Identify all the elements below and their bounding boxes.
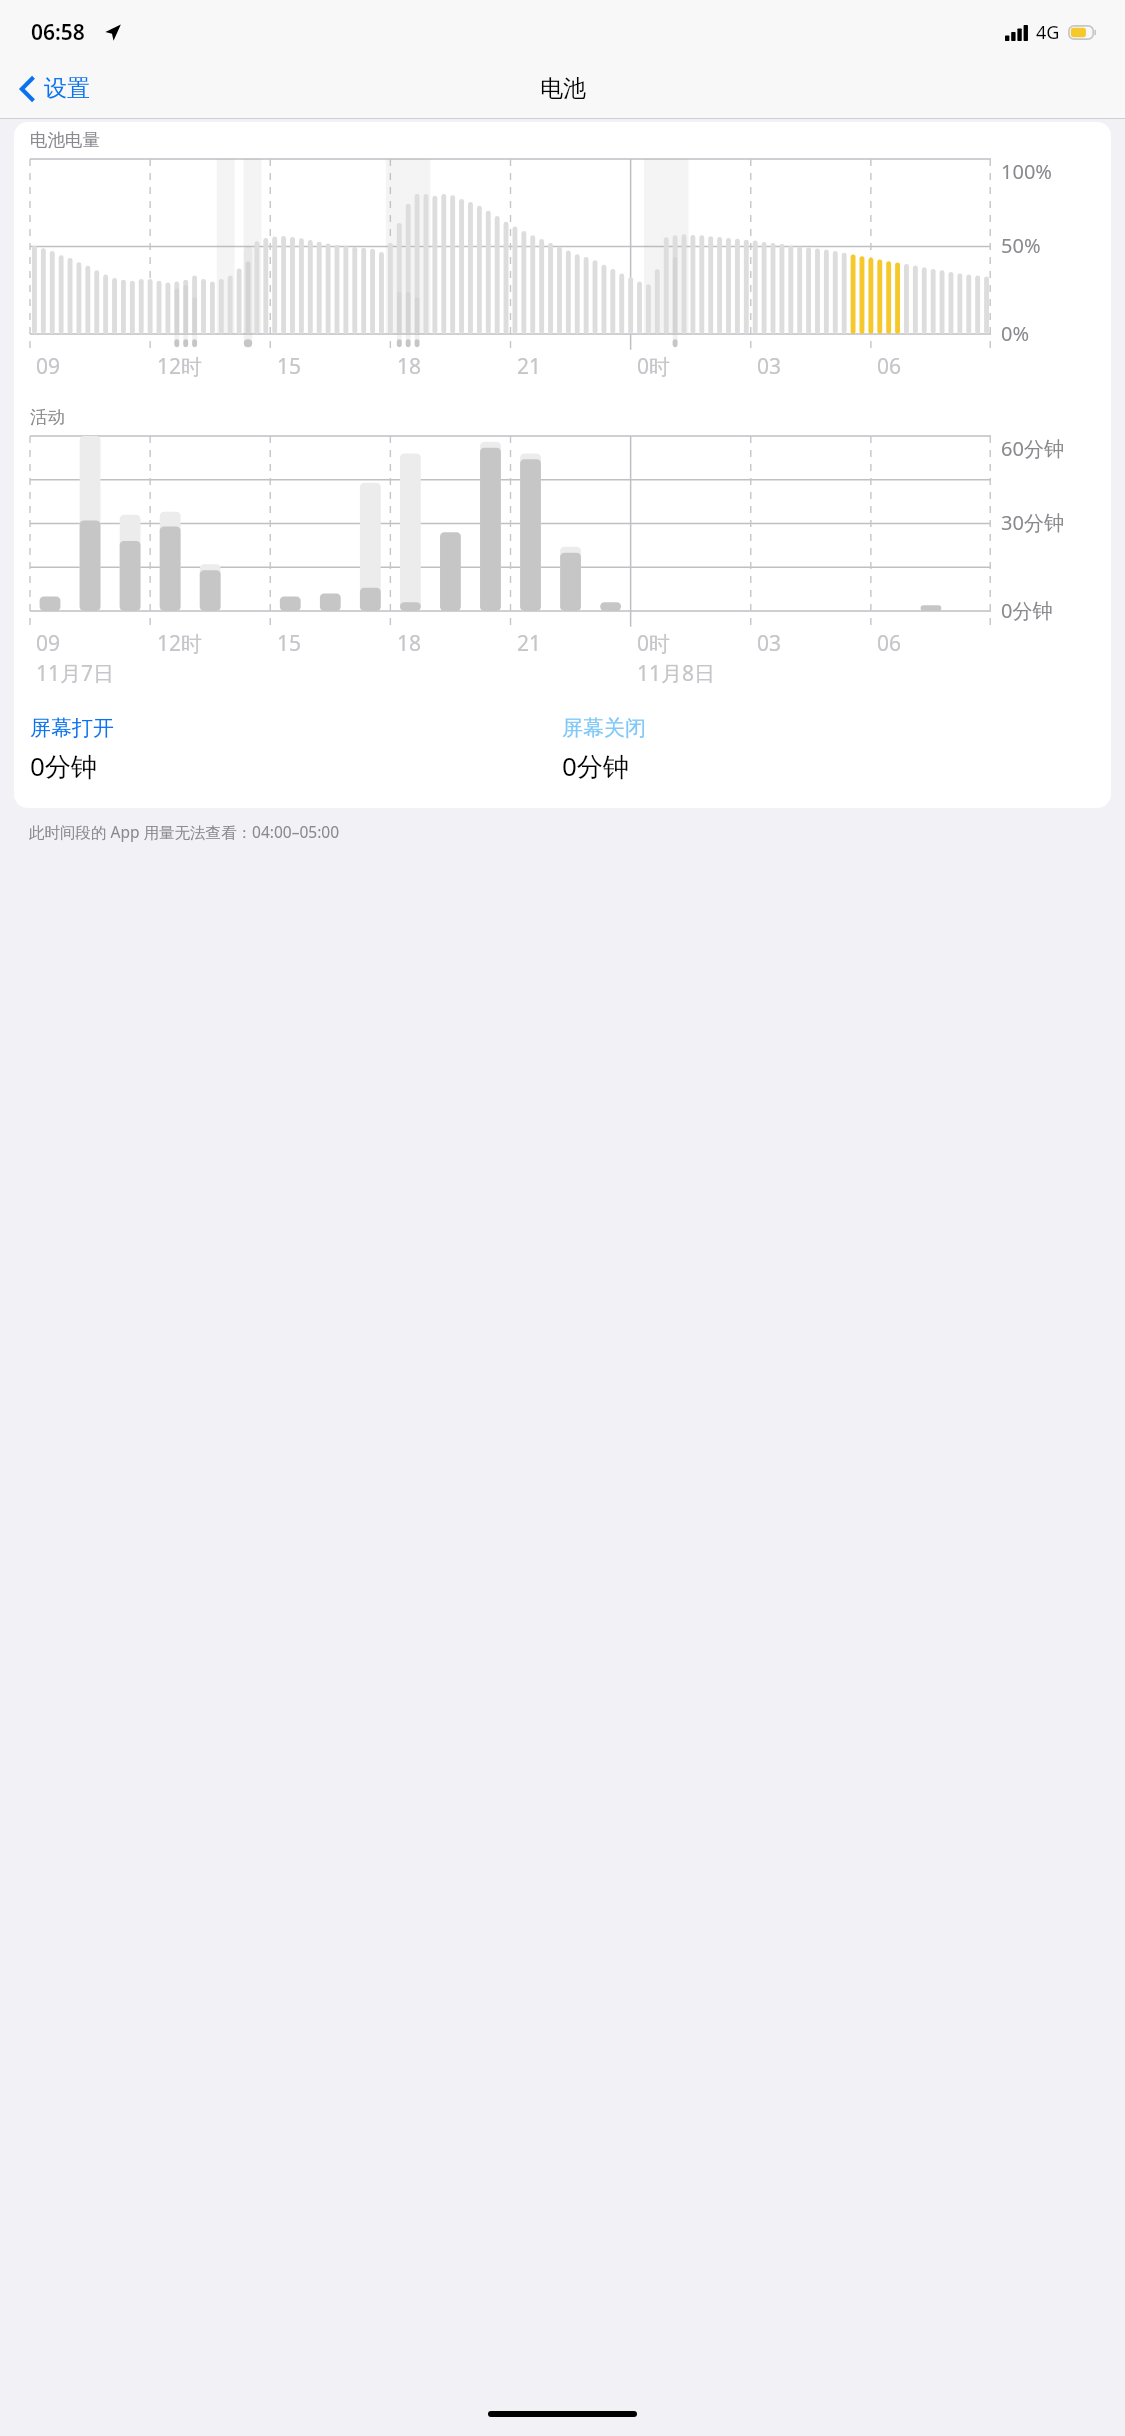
staticText: 50% <box>1001 232 1041 259</box>
staticText: 09 <box>36 352 61 381</box>
staticText: 0% <box>1001 320 1030 347</box>
staticText: 0分钟 <box>1001 597 1053 624</box>
staticText: 活动 <box>30 406 65 428</box>
staticText: 电池电量 <box>30 129 100 151</box>
staticText: 15 <box>277 629 302 658</box>
staticText: 15 <box>277 352 302 381</box>
staticText: 03 <box>757 629 782 658</box>
staticText: 06:58 <box>31 18 85 47</box>
staticText: 0时 <box>637 629 671 658</box>
staticText: 0时 <box>637 352 671 381</box>
staticText: 21 <box>517 629 542 658</box>
staticText: 此时间段的 App 用量无法查看：04:00–05:00 <box>29 821 340 842</box>
staticText: 03 <box>757 352 782 381</box>
staticText: 11月8日 <box>637 659 716 688</box>
staticText: 11月7日 <box>36 659 115 688</box>
staticText: 21 <box>517 352 542 381</box>
staticText: 30分钟 <box>1001 509 1064 536</box>
staticText: 0分钟 <box>562 748 629 784</box>
staticText: 06 <box>877 352 902 381</box>
staticText: 09 <box>36 629 61 658</box>
button[interactable]: 设置 <box>0 66 106 111</box>
staticText: 100% <box>1001 158 1052 185</box>
staticText: 屏幕打开 <box>30 715 114 741</box>
staticText: 12时 <box>157 629 203 658</box>
staticText: 电池 <box>540 74 586 103</box>
staticText: 0分钟 <box>30 748 97 784</box>
button[interactable]: 屏幕关闭 <box>562 715 1095 784</box>
button[interactable]: 屏幕打开 <box>30 715 562 784</box>
staticText: 18 <box>397 629 422 658</box>
staticText: 屏幕关闭 <box>562 715 646 741</box>
staticText: 设置 <box>44 74 90 103</box>
staticText: 18 <box>397 352 422 381</box>
staticText: 4G <box>1036 20 1060 45</box>
other: Location <box>104 24 121 41</box>
staticText: 06 <box>877 629 902 658</box>
staticText: 12时 <box>157 352 203 381</box>
staticText: 60分钟 <box>1001 435 1064 462</box>
